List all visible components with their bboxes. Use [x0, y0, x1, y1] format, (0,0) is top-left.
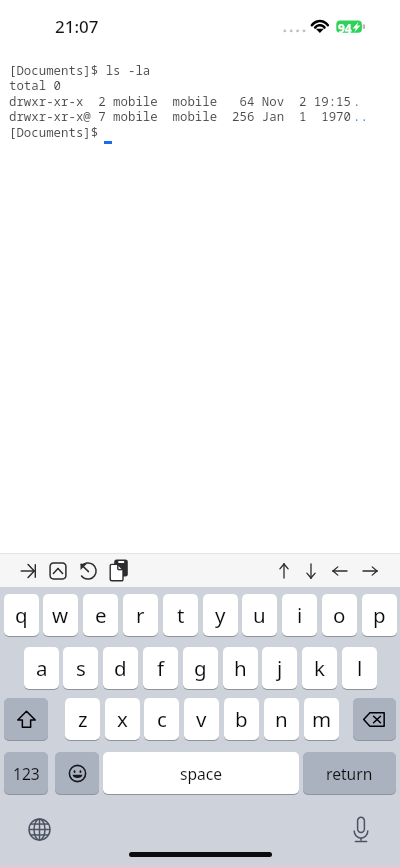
staticText: b	[235, 705, 248, 733]
staticText: r	[136, 601, 145, 629]
staticText: p	[373, 601, 386, 629]
staticText: e	[95, 601, 107, 629]
staticText: return	[326, 763, 373, 784]
button[interactable]: i	[282, 594, 317, 636]
staticText: v	[196, 705, 207, 733]
button[interactable]: n	[264, 698, 299, 740]
staticText: drwxr-xr-x 2 mobile mobile 64 Nov 2 19:1…	[9, 93, 359, 110]
staticText: s	[76, 654, 86, 682]
button[interactable]: s	[63, 647, 98, 689]
button[interactable]: f	[143, 647, 178, 689]
button[interactable]: Arrow Left	[326, 553, 354, 587]
button[interactable]: w	[43, 594, 78, 636]
button[interactable]: q	[4, 594, 39, 636]
staticText: q	[15, 601, 28, 629]
staticText: y	[215, 601, 226, 629]
staticText: 123	[13, 763, 40, 784]
staticText: g	[194, 654, 207, 682]
button[interactable]: t	[163, 594, 198, 636]
button[interactable]: Shift	[4, 698, 48, 740]
button[interactable]: k	[302, 647, 337, 689]
staticText: [Documents]$	[9, 124, 106, 141]
staticText: a	[36, 654, 48, 682]
button[interactable]: d	[103, 647, 138, 689]
staticText: n	[275, 705, 288, 733]
staticText: o	[333, 601, 346, 629]
button[interactable]: v	[184, 698, 219, 740]
button[interactable]: Control	[44, 553, 72, 587]
staticText: j	[277, 654, 283, 682]
button[interactable]: Arrow Up	[270, 553, 298, 587]
button[interactable]: y	[203, 594, 238, 636]
staticText: t	[177, 601, 185, 629]
button[interactable]: space	[103, 752, 299, 794]
button[interactable]: z	[65, 698, 100, 740]
button[interactable]: return	[303, 752, 396, 794]
button[interactable]: Next keyboard	[27, 817, 52, 842]
staticText: space	[180, 763, 223, 784]
button[interactable]: Paste	[105, 553, 133, 587]
button[interactable]: x	[105, 698, 140, 740]
staticText: x	[117, 705, 128, 733]
button[interactable]: h	[223, 647, 258, 689]
staticText: l	[357, 654, 363, 682]
staticText: k	[314, 654, 325, 682]
button[interactable]: j	[262, 647, 297, 689]
staticText: w	[52, 601, 69, 629]
button[interactable]: e	[83, 594, 118, 636]
staticText: u	[253, 601, 266, 629]
staticText: total 0	[9, 77, 62, 94]
button[interactable]: p	[362, 594, 397, 636]
button[interactable]: Dictation	[348, 814, 373, 844]
staticText: c	[157, 705, 167, 733]
staticText: f	[157, 654, 165, 682]
staticText: i	[297, 601, 303, 629]
button[interactable]: Tab	[14, 553, 42, 587]
staticText: h	[234, 654, 247, 682]
button[interactable]: c	[144, 698, 179, 740]
button[interactable]: Arrow Right	[356, 553, 384, 587]
button[interactable]: r	[123, 594, 158, 636]
staticText: drwxr-xr-x@ 7 mobile mobile 256 Jan 1 19…	[9, 108, 359, 125]
staticText: z	[78, 705, 88, 733]
staticText: [Documents]$ ls -la	[9, 62, 151, 79]
staticText: 21:07	[55, 15, 99, 38]
button[interactable]: History	[74, 553, 102, 587]
button[interactable]: b	[224, 698, 259, 740]
button[interactable]: Emoji	[55, 752, 99, 794]
button[interactable]: l	[342, 647, 377, 689]
staticText: .	[353, 93, 361, 110]
button[interactable]: o	[322, 594, 357, 636]
button[interactable]: u	[242, 594, 277, 636]
button[interactable]: Backspace	[353, 698, 396, 740]
button[interactable]: Arrow Down	[297, 553, 325, 587]
staticText: 94	[338, 20, 352, 36]
staticText: d	[114, 654, 127, 682]
button[interactable]: g	[183, 647, 218, 689]
button[interactable]: m	[304, 698, 339, 740]
button[interactable]: 123	[4, 752, 48, 794]
button[interactable]: a	[24, 647, 59, 689]
staticText: ..	[353, 108, 368, 125]
staticText: m	[312, 705, 332, 733]
